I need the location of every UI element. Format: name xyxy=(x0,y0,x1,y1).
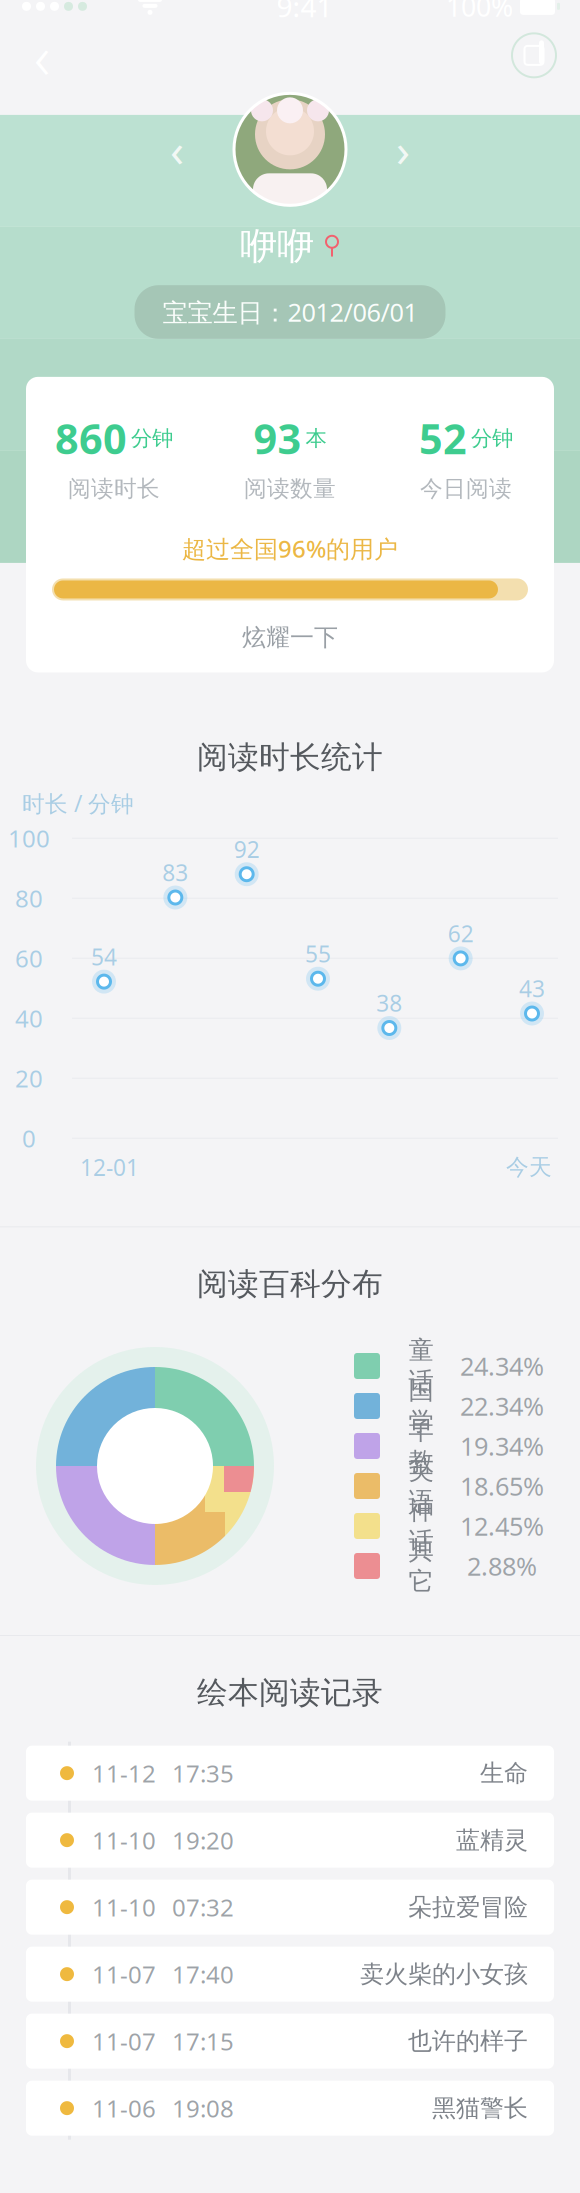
staticText: 11-10 xyxy=(92,1891,156,1923)
staticText: 22.34% xyxy=(460,1389,544,1423)
staticText: 童话 xyxy=(408,1335,433,1397)
staticText: 83 xyxy=(162,857,188,888)
staticText: 11-12 xyxy=(92,1757,156,1789)
staticText: 54 xyxy=(91,942,117,972)
staticText: 宝宝生日：2012/06/01 xyxy=(162,295,417,329)
staticText: 19.34% xyxy=(460,1429,544,1463)
staticText: 11-06 xyxy=(92,2092,156,2124)
staticText: 11-10 xyxy=(92,1824,156,1856)
staticText: 神话 xyxy=(408,1495,433,1557)
staticText: 今日阅读 xyxy=(420,475,512,502)
button[interactable]: 11-12 xyxy=(26,1746,554,1801)
staticText: 其它 xyxy=(408,1535,433,1597)
staticText: 12-01 xyxy=(80,1152,139,1182)
staticText: 阅读时长统计 xyxy=(197,738,383,776)
button[interactable]: Edit profile xyxy=(506,27,562,83)
staticText: 17:35 xyxy=(172,1757,234,1789)
staticText: 阅读时长 xyxy=(68,475,160,502)
staticText: 20 xyxy=(15,1062,43,1094)
button[interactable]: Previous child xyxy=(154,126,200,172)
staticText: 炫耀一下 xyxy=(242,623,338,652)
button[interactable]: 11-10 xyxy=(26,1813,554,1868)
staticText: 12.45% xyxy=(460,1509,544,1543)
staticText: 93 xyxy=(253,411,301,466)
button[interactable]: Next child xyxy=(380,126,426,172)
staticText: 阅读百科分布 xyxy=(197,1265,383,1303)
staticText: 分钟 xyxy=(471,425,513,451)
staticText: 19:20 xyxy=(172,1824,234,1856)
staticText: 黑猫警长 xyxy=(432,2093,528,2123)
staticText: 朵拉爱冒险 xyxy=(408,1892,528,1922)
staticText: 43 xyxy=(519,973,545,1004)
staticText: 本 xyxy=(305,425,326,451)
staticText: 早教 xyxy=(408,1415,433,1477)
staticText: › xyxy=(396,119,410,179)
staticText: 62 xyxy=(448,918,474,948)
staticText: 分钟 xyxy=(131,425,173,451)
staticText: 100% xyxy=(446,0,513,24)
button[interactable]: 11-10 xyxy=(26,1880,554,1935)
staticText: 今天 xyxy=(506,1153,552,1181)
staticText: 38 xyxy=(376,988,402,1018)
staticText: 阅读数量 xyxy=(244,475,336,502)
staticText: 19:08 xyxy=(172,2092,234,2124)
staticText: 07:32 xyxy=(172,1891,234,1923)
staticText: 11-07 xyxy=(92,1958,156,1990)
staticText: 17:15 xyxy=(172,2025,234,2057)
staticText: 生命 xyxy=(480,1758,528,1788)
staticText: 9:41 xyxy=(276,0,332,25)
staticText: 52 xyxy=(419,411,467,466)
button[interactable]: 炫耀一下 xyxy=(26,620,554,654)
staticText: 也许的样子 xyxy=(408,2026,528,2056)
staticText: 92 xyxy=(234,834,260,864)
staticText: ‹ xyxy=(170,119,184,179)
staticText: 18.65% xyxy=(460,1469,544,1503)
staticText: 17:40 xyxy=(172,1958,234,1990)
button[interactable]: 11-06 xyxy=(26,2081,554,2136)
staticText: 0 xyxy=(22,1122,36,1154)
button[interactable]: 11-07 xyxy=(26,2014,554,2069)
button[interactable]: 11-07 xyxy=(26,1947,554,2002)
staticText: 860 xyxy=(55,411,127,466)
staticText: 100 xyxy=(8,822,50,854)
staticText: 11-07 xyxy=(92,2025,156,2057)
staticText: 超过全国96%的用户 xyxy=(182,533,398,564)
button[interactable]: Child avatar xyxy=(234,93,346,205)
staticText: 国学 xyxy=(408,1375,433,1437)
staticText: 24.34% xyxy=(460,1349,544,1383)
staticText: 英语 xyxy=(408,1455,433,1517)
staticText: 咿咿 xyxy=(240,223,314,269)
staticText: 绘本阅读记录 xyxy=(197,1674,383,1712)
staticText: 2.88% xyxy=(467,1549,537,1583)
staticText: 卖火柴的小女孩 xyxy=(360,1959,528,1989)
staticText: 40 xyxy=(15,1002,43,1034)
staticText: 蓝精灵 xyxy=(456,1825,528,1855)
staticText: 55 xyxy=(305,939,331,969)
staticText: 80 xyxy=(15,882,43,914)
staticText: 60 xyxy=(15,942,43,974)
staticText: 时长 / 分钟 xyxy=(22,788,134,818)
